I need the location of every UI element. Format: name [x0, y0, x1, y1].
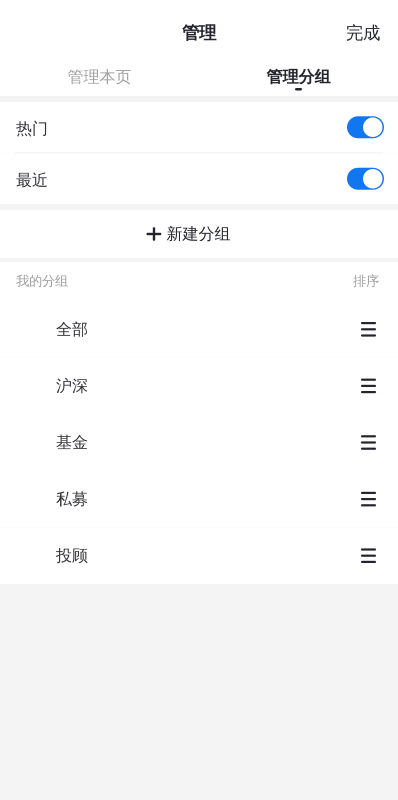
button[interactable]: 最近	[0, 153, 398, 204]
staticText: 沪深	[56, 376, 88, 396]
button[interactable]: 全部	[0, 301, 398, 358]
staticText: 最近	[16, 170, 48, 190]
button[interactable]: 管理分组	[199, 58, 398, 96]
staticText: 投顾	[56, 546, 88, 566]
staticText: 完成	[346, 22, 380, 44]
button[interactable]: 完成	[328, 12, 398, 54]
staticText: 我的分组	[16, 273, 68, 289]
staticText: 新建分组	[166, 224, 230, 244]
staticText: 基金	[56, 433, 88, 452]
staticText: 管理	[182, 22, 216, 44]
button[interactable]: 沪深	[0, 358, 398, 414]
staticText: 私募	[56, 489, 88, 509]
staticText: 排序	[353, 273, 379, 289]
staticText: 管理分组	[266, 67, 330, 87]
button[interactable]: 新建分组	[0, 210, 398, 258]
staticText: 管理本页	[67, 67, 131, 87]
button[interactable]: 基金	[0, 414, 398, 471]
staticText: 热门	[16, 119, 48, 139]
button[interactable]: 管理本页	[0, 58, 199, 96]
button[interactable]: 排序	[341, 267, 379, 295]
button[interactable]: 投顾	[0, 527, 398, 584]
staticText: 全部	[56, 319, 88, 339]
button[interactable]: 热门	[0, 102, 398, 152]
button[interactable]: 私募	[0, 471, 398, 527]
